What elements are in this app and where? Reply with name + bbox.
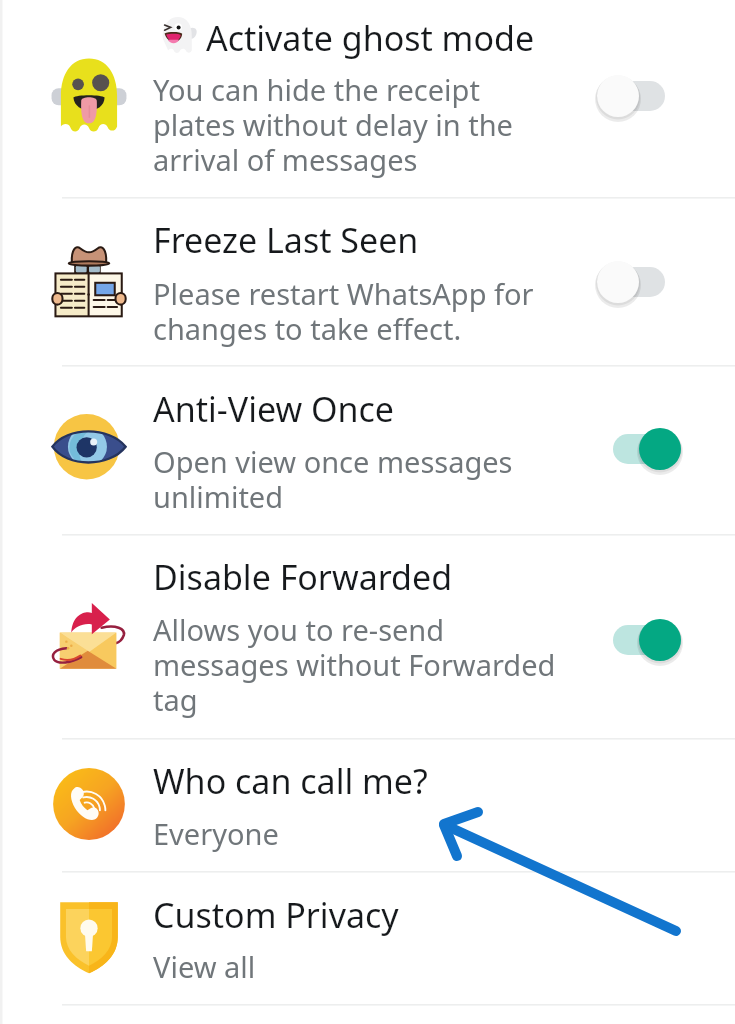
staticText: Please restart WhatsApp for changes to t… [153,274,534,349]
staticText: Anti-View Once [153,386,395,432]
button[interactable]: Disable Forwarded [0,534,735,738]
button[interactable]: Anti-View Once switch, on [580,414,700,484]
staticText: You can hide the receipt plates without … [153,70,513,180]
button[interactable]: Freeze Last Seen [0,197,735,365]
button[interactable]: Anti-View Once [0,365,735,534]
button[interactable]: Who can call me? [0,738,735,871]
staticText: Who can call me? [153,758,428,804]
staticText: Activate ghost mode [206,15,535,61]
staticText: View all [153,947,256,986]
staticText: Disable Forwarded [153,554,453,600]
staticText: Everyone [153,814,279,853]
staticText: Allows you to re-send messages without F… [153,610,556,720]
staticText: Open view once messages unlimited [153,442,513,517]
button[interactable]: Disable Forwarded switch, on [580,605,700,675]
staticText: Custom Privacy [153,892,399,938]
staticText: Freeze Last Seen [153,217,419,263]
button[interactable]: Activate ghost mode [0,0,735,197]
button[interactable]: Custom Privacy [0,871,735,1004]
button[interactable]: Activate ghost mode switch, off [580,61,700,131]
button[interactable]: Freeze Last Seen switch, off [580,247,700,317]
